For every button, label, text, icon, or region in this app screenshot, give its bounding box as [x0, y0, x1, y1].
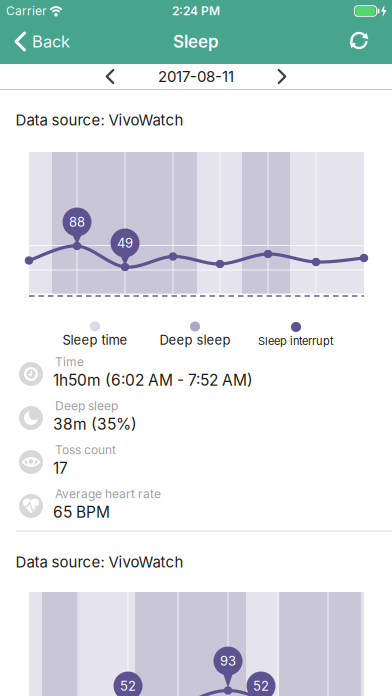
staticText: 38m (35%) [53, 415, 137, 433]
staticText: 52 [253, 678, 269, 694]
staticText: 52 [120, 678, 136, 694]
staticText: 2:24 PM [172, 4, 220, 18]
staticText: Time [55, 355, 84, 369]
staticText: 49 [117, 235, 133, 251]
staticText: Deep sleep [159, 332, 230, 348]
staticText: Back [32, 31, 70, 51]
staticText: 1h50m (6:02 AM - 7:52 AM) [53, 371, 253, 389]
staticText: Sleep interrupt [258, 334, 334, 348]
button[interactable]: Back [10, 23, 74, 59]
button[interactable]: Previous day [95, 63, 125, 89]
staticText: Sleep [173, 31, 219, 52]
staticText: 17 [53, 459, 68, 477]
staticText: Data source: VivoWatch [15, 111, 183, 129]
staticText: Data source: VivoWatch [15, 553, 183, 571]
staticText: Toss count [55, 443, 116, 457]
button[interactable]: Sync [341, 22, 377, 58]
staticText: 93 [220, 653, 236, 669]
staticText: Carrier [6, 4, 47, 18]
staticText: Deep sleep [55, 399, 118, 413]
staticText: Average heart rate [55, 487, 161, 501]
button[interactable]: Next day [267, 63, 297, 89]
staticText: 2017-08-11 [158, 67, 234, 85]
staticText: Sleep time [62, 332, 127, 348]
staticText: 88 [69, 214, 85, 230]
staticText: 65 BPM [53, 503, 110, 521]
